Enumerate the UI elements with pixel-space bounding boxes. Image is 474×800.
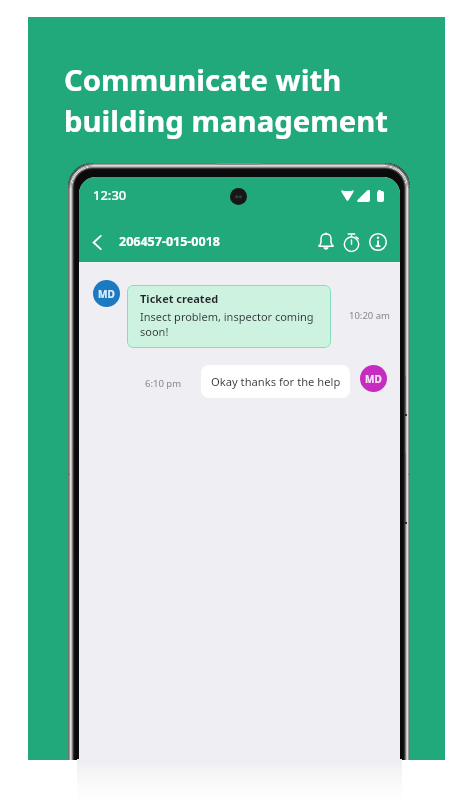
button[interactable]: Okay thanks for the help (201, 365, 350, 398)
staticText: Communicate with building management (64, 60, 389, 140)
button[interactable]: Timer (337, 227, 366, 256)
staticText: Insect problem, inspector coming soon! (140, 309, 322, 339)
button[interactable]: Back (82, 227, 112, 257)
staticText: Okay thanks for the help (211, 374, 341, 389)
staticText: 206457-015-0018 (119, 233, 220, 250)
staticText: Ticket created (140, 291, 219, 306)
button[interactable]: Info (363, 227, 392, 256)
staticText: 12:30 (93, 186, 127, 204)
staticText: MD (98, 287, 115, 301)
button[interactable]: Ticket created (127, 285, 331, 348)
staticText: 10:20 am (349, 309, 390, 322)
staticText: 6:10 pm (145, 377, 182, 390)
staticText: MD (365, 372, 382, 386)
button[interactable]: Notifications (311, 227, 340, 256)
